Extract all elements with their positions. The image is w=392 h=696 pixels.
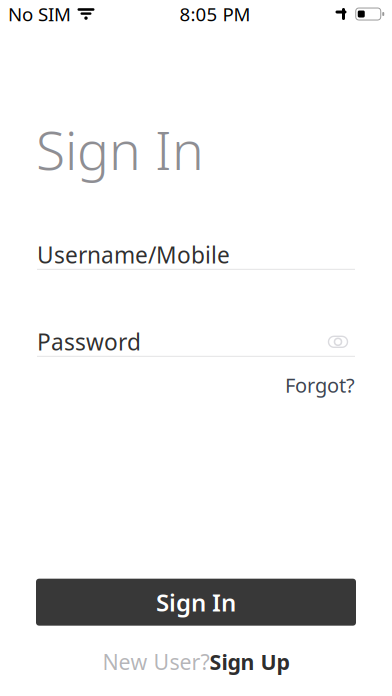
button[interactable]: Show password [321, 329, 355, 355]
staticText: Sign Up [209, 648, 289, 676]
staticText: 8:05 PM [179, 2, 250, 26]
staticText: Sign In [36, 114, 204, 185]
staticText: Username/Mobile [37, 240, 230, 270]
button[interactable]: New User? [88, 642, 303, 682]
staticText: Forgot? [285, 372, 355, 398]
button[interactable]: Forgot? [275, 367, 355, 403]
staticText: Sign In [156, 586, 236, 618]
staticText: Password [37, 327, 141, 357]
staticText: No SIM [8, 2, 71, 26]
staticText: New User? [102, 648, 209, 676]
button[interactable]: Sign In [36, 579, 356, 626]
